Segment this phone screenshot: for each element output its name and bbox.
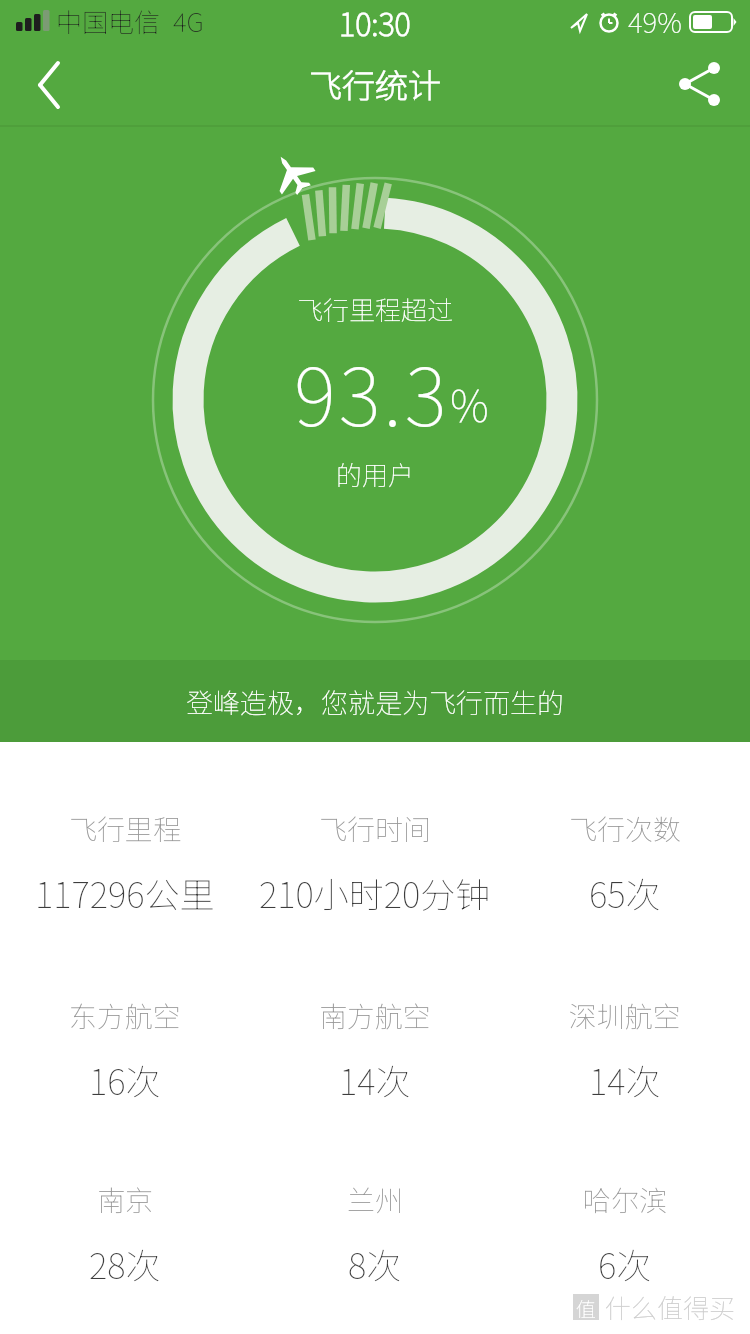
staticText: 14次 — [589, 1054, 661, 1105]
staticText: 飞行里程 — [69, 808, 182, 849]
staticText: 10:30 — [339, 0, 411, 42]
staticText: 值 — [576, 1294, 596, 1320]
button[interactable] — [28, 62, 72, 106]
staticText: 什么值得买 — [605, 1288, 736, 1326]
button[interactable] — [676, 60, 724, 108]
staticText: 飞行次数 — [569, 808, 682, 849]
staticText: 深圳航空 — [569, 995, 682, 1036]
staticText: 登峰造极，您就是为飞行而生的 — [186, 682, 564, 721]
staticText: 14次 — [339, 1054, 411, 1105]
staticText: 飞行时间 — [319, 808, 432, 849]
staticText: 210小时20分钟 — [259, 867, 491, 918]
staticText: 117296公里 — [35, 867, 215, 918]
staticText: 南方航空 — [319, 995, 432, 1036]
staticText: 65次 — [589, 867, 661, 918]
staticText: 8次 — [348, 1238, 402, 1289]
staticText: 飞行统计 — [309, 60, 441, 108]
staticText: 东方航空 — [69, 995, 182, 1036]
staticText: 4G — [173, 2, 204, 40]
staticText: 的用户 — [336, 455, 415, 493]
staticText: 南京 — [97, 1179, 154, 1220]
staticText: 哈尔滨 — [583, 1179, 668, 1220]
staticText: 飞行里程超过 — [297, 290, 454, 328]
staticText: 28次 — [89, 1238, 161, 1289]
staticText: 16次 — [89, 1054, 161, 1105]
staticText: 6次 — [598, 1238, 652, 1289]
staticText: 49% — [628, 1, 682, 42]
staticText: 中国电信 — [56, 2, 161, 40]
staticText: 93.3 — [294, 333, 450, 449]
staticText: % — [450, 371, 489, 435]
staticText: 兰州 — [347, 1179, 404, 1220]
